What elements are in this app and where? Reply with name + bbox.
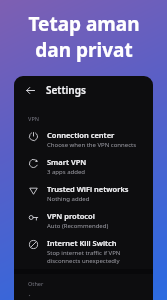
staticText: Stop internet traffic if VPN disconnects… [47, 249, 121, 265]
staticText: 3 apps added [47, 168, 85, 176]
staticText: Tetap aman [28, 11, 140, 37]
button[interactable]: Back [23, 83, 37, 97]
staticText: Connection center [47, 130, 115, 140]
button[interactable]: VPN protocol [14, 207, 153, 234]
staticText: VPN [28, 115, 40, 122]
staticText: Auto (Recommended) [47, 222, 109, 230]
button[interactable]: Smart VPN [14, 153, 153, 180]
button[interactable]: Trusted WiFi networks [14, 180, 153, 207]
staticText: Trusted WiFi networks [47, 184, 129, 194]
staticText: Choose when the VPN connects [47, 141, 137, 149]
staticText: Internet Kill Switch [47, 238, 117, 248]
staticText: Settings [46, 83, 86, 97]
staticText: Smart VPN [47, 157, 87, 167]
staticText: VPN protocol [47, 211, 95, 221]
staticText: dan privat [35, 37, 133, 63]
button[interactable]: Back [14, 76, 153, 104]
staticText: Nothing added [47, 195, 90, 203]
button[interactable]: Connection center [14, 126, 153, 153]
staticText: Other [28, 280, 44, 287]
button[interactable]: Internet Kill Switch [14, 234, 153, 269]
